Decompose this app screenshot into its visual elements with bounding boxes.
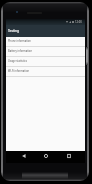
button[interactable]: Phone information — [6, 37, 85, 47]
staticText: Wi-Fi information — [8, 69, 30, 73]
staticText: Usage statistics — [8, 59, 27, 63]
staticText: Testing — [8, 29, 20, 33]
staticText: 12:00 — [75, 20, 82, 24]
button[interactable]: Back — [20, 152, 28, 160]
button[interactable]: Testing — [6, 25, 85, 37]
button[interactable]: Home — [42, 152, 50, 160]
button[interactable]: Battery information — [6, 47, 85, 57]
button[interactable]: Recent apps — [65, 152, 73, 160]
staticText: Battery information — [8, 49, 33, 53]
staticText: Phone information — [8, 39, 31, 43]
button[interactable]: Wi-Fi information — [6, 67, 85, 77]
button[interactable]: Usage statistics — [6, 57, 85, 67]
